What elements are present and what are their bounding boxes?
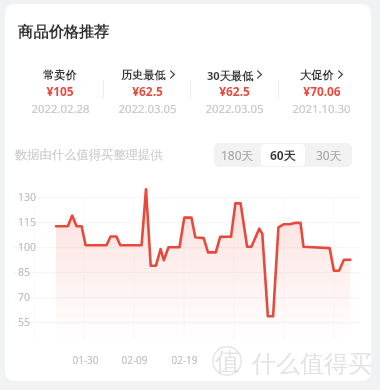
staticText: 130 <box>18 190 37 204</box>
staticText: 历史最低 <box>121 68 166 82</box>
staticText: 数据由什么值得买整理提供 <box>15 147 163 162</box>
staticText: 商品价格推荐 <box>18 22 110 41</box>
button[interactable]: 大促价 <box>278 67 365 119</box>
staticText: 2022.03.05 <box>118 101 177 117</box>
button[interactable]: 历史最低 <box>104 67 191 119</box>
staticText: 值 <box>215 346 240 376</box>
button[interactable]: 60天 <box>261 144 305 166</box>
staticText: 55 <box>18 315 31 329</box>
staticText: 大促价 <box>300 68 334 82</box>
staticText: 01-30 <box>72 353 99 367</box>
staticText: ¥105 <box>46 83 74 99</box>
staticText: ¥70.06 <box>303 83 341 99</box>
button[interactable]: 30天 <box>307 144 351 166</box>
staticText: 85 <box>18 265 31 279</box>
staticText: 70 <box>18 290 31 304</box>
staticText: ¥62.5 <box>132 83 163 99</box>
staticText: 60天 <box>270 147 296 163</box>
staticText: 常卖价 <box>43 68 77 82</box>
staticText: 什么值得买 <box>252 349 371 377</box>
staticText: 100 <box>18 240 37 254</box>
staticText: ¥62.5 <box>219 83 250 99</box>
staticText: 115 <box>18 215 37 229</box>
button[interactable]: 180天 <box>215 144 259 166</box>
staticText: 2022.02.28 <box>31 101 90 117</box>
staticText: 30天最低 <box>207 68 253 83</box>
staticText: 2021.10.30 <box>292 101 351 117</box>
staticText: 02-19 <box>171 353 198 367</box>
button[interactable]: 30天最低 <box>191 67 278 119</box>
staticText: 02-09 <box>121 353 148 367</box>
staticText: 2022.03.05 <box>205 101 264 117</box>
button[interactable]: 常卖价 <box>16 67 104 119</box>
staticText: 180天 <box>221 147 254 163</box>
staticText: 30天 <box>316 147 342 163</box>
